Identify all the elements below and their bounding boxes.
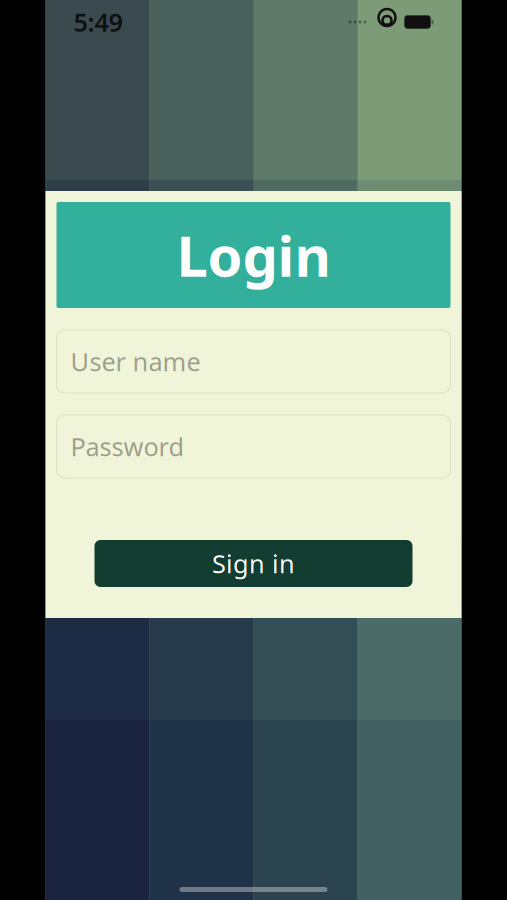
staticText: 5:49 — [73, 5, 122, 39]
button[interactable]: User name — [56, 330, 450, 393]
button[interactable]: Sign in — [94, 540, 412, 587]
staticText: User name — [70, 345, 200, 378]
button[interactable]: Password — [56, 415, 450, 478]
staticText: Password — [70, 430, 184, 463]
staticText: Sign in — [212, 547, 295, 580]
staticText: Login — [176, 218, 330, 292]
